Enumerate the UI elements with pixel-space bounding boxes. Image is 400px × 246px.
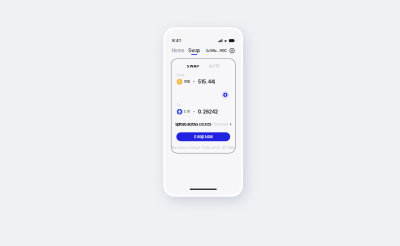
staticText: From — [177, 73, 185, 77]
staticText: Max price change 1% — [171, 146, 205, 149]
staticText: 3 Selected — [211, 122, 228, 126]
staticText: 0x59fa…9f0C — [205, 48, 227, 53]
button[interactable]: Swap — [188, 49, 200, 55]
staticText: To — [177, 103, 181, 107]
button[interactable]: Home — [172, 49, 184, 53]
button[interactable]: 3 Selected — [211, 122, 231, 126]
staticText: 0.26242 — [198, 109, 218, 115]
button[interactable]: Account menu — [229, 48, 235, 53]
staticText: 515.44 — [198, 79, 214, 85]
staticText: ETH — [184, 110, 190, 113]
button[interactable]: AUTO — [209, 64, 220, 68]
staticText: Spread across DEXes — [175, 122, 211, 126]
staticText: AUTO — [209, 64, 220, 68]
button[interactable]: BNB — [177, 79, 195, 85]
staticText: Swap Now — [194, 134, 213, 139]
staticText: BNB — [184, 80, 190, 83]
button[interactable]: Swap direction — [222, 91, 229, 99]
staticText: Swap — [188, 48, 200, 53]
staticText: Home — [172, 48, 184, 53]
staticText: 9:41 — [172, 38, 181, 43]
button[interactable]: Swap Now — [176, 132, 230, 141]
staticText: SWAP — [187, 64, 200, 68]
button[interactable]: SWAP — [187, 64, 200, 68]
button[interactable]: ETH — [177, 109, 195, 115]
staticText: Gas price: 19.1 Gwei — [205, 146, 235, 149]
